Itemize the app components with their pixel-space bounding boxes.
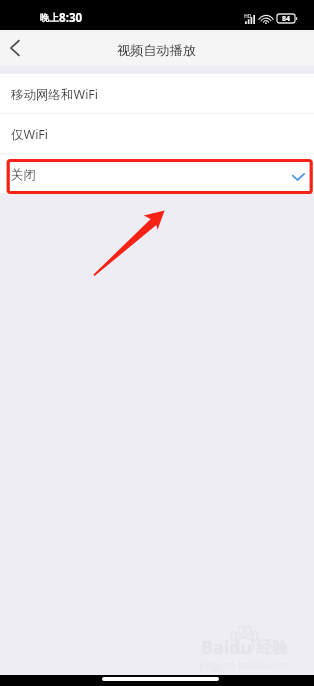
staticText: 仅WiFi <box>11 126 49 143</box>
staticText: 移动网络和WiFi <box>11 86 99 103</box>
staticText: 8:30 <box>59 10 83 26</box>
staticText: 84 <box>282 14 291 23</box>
staticText: 关闭 <box>11 167 36 183</box>
staticText: 经验 <box>256 638 288 658</box>
staticText: 晚上 <box>40 12 59 24</box>
staticText: Baidu <box>201 635 253 660</box>
button[interactable]: 关闭 <box>0 154 314 193</box>
button[interactable]: 移动网络和WiFi <box>0 74 314 113</box>
button[interactable]: Back <box>0 30 30 66</box>
button[interactable]: 仅WiFi <box>0 114 314 153</box>
staticText: 视频自动播放 <box>117 42 197 59</box>
staticText: HD <box>244 13 252 20</box>
